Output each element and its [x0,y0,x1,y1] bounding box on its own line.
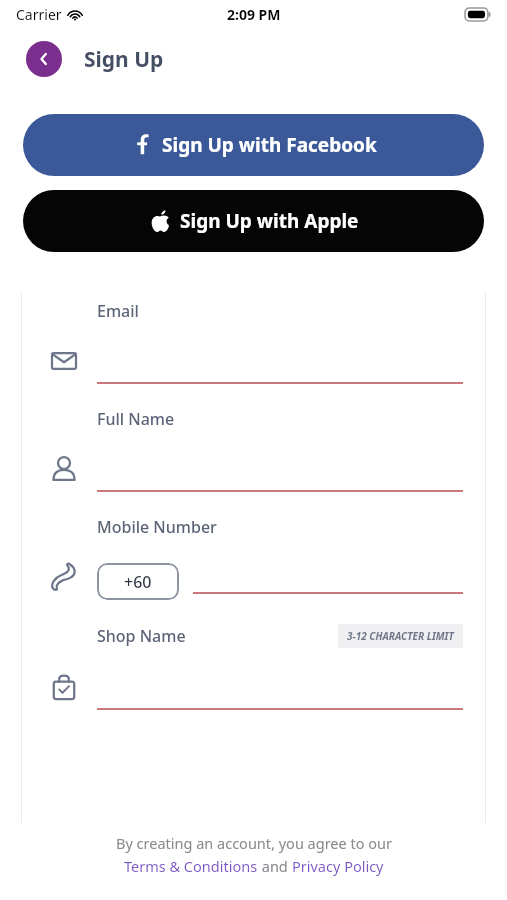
button[interactable]: Terms & Conditions [124,856,258,876]
button[interactable]: Full Name [22,446,485,492]
staticText: and [258,856,292,876]
staticText: Shop Name [97,625,186,647]
button[interactable]: Back [26,41,62,77]
button[interactable]: Mobile Number [22,554,485,600]
staticText: Full Name [97,408,175,430]
staticText: 3-12 CHARACTER LIMIT [347,629,454,643]
other: Full Name [49,454,79,484]
button[interactable]: Email [22,338,485,384]
staticText: Privacy Policy [292,856,384,876]
staticText: Email [97,300,139,322]
button[interactable]: Shop Name [22,664,485,710]
button[interactable]: Sign Up with Facebook [23,114,484,176]
staticText: Sign Up with Facebook [162,132,377,158]
staticText: Sign Up with Apple [180,208,359,234]
button[interactable]: Privacy Policy [292,856,384,876]
other: Email [49,346,79,376]
other: Mobile Number [49,562,79,592]
staticText: Mobile Number [97,516,217,538]
staticText: Terms & Conditions [124,856,258,876]
button[interactable]: Sign Up with Apple [23,190,484,252]
button[interactable]: +60 [97,563,179,600]
staticText: +60 [124,571,152,593]
staticText: Sign Up [84,45,164,74]
other: Shop Name [49,672,79,702]
staticText: Carrier [16,5,62,24]
staticText: By creating an account, you agree to our [116,833,392,853]
staticText: 2:09 PM [227,5,281,24]
